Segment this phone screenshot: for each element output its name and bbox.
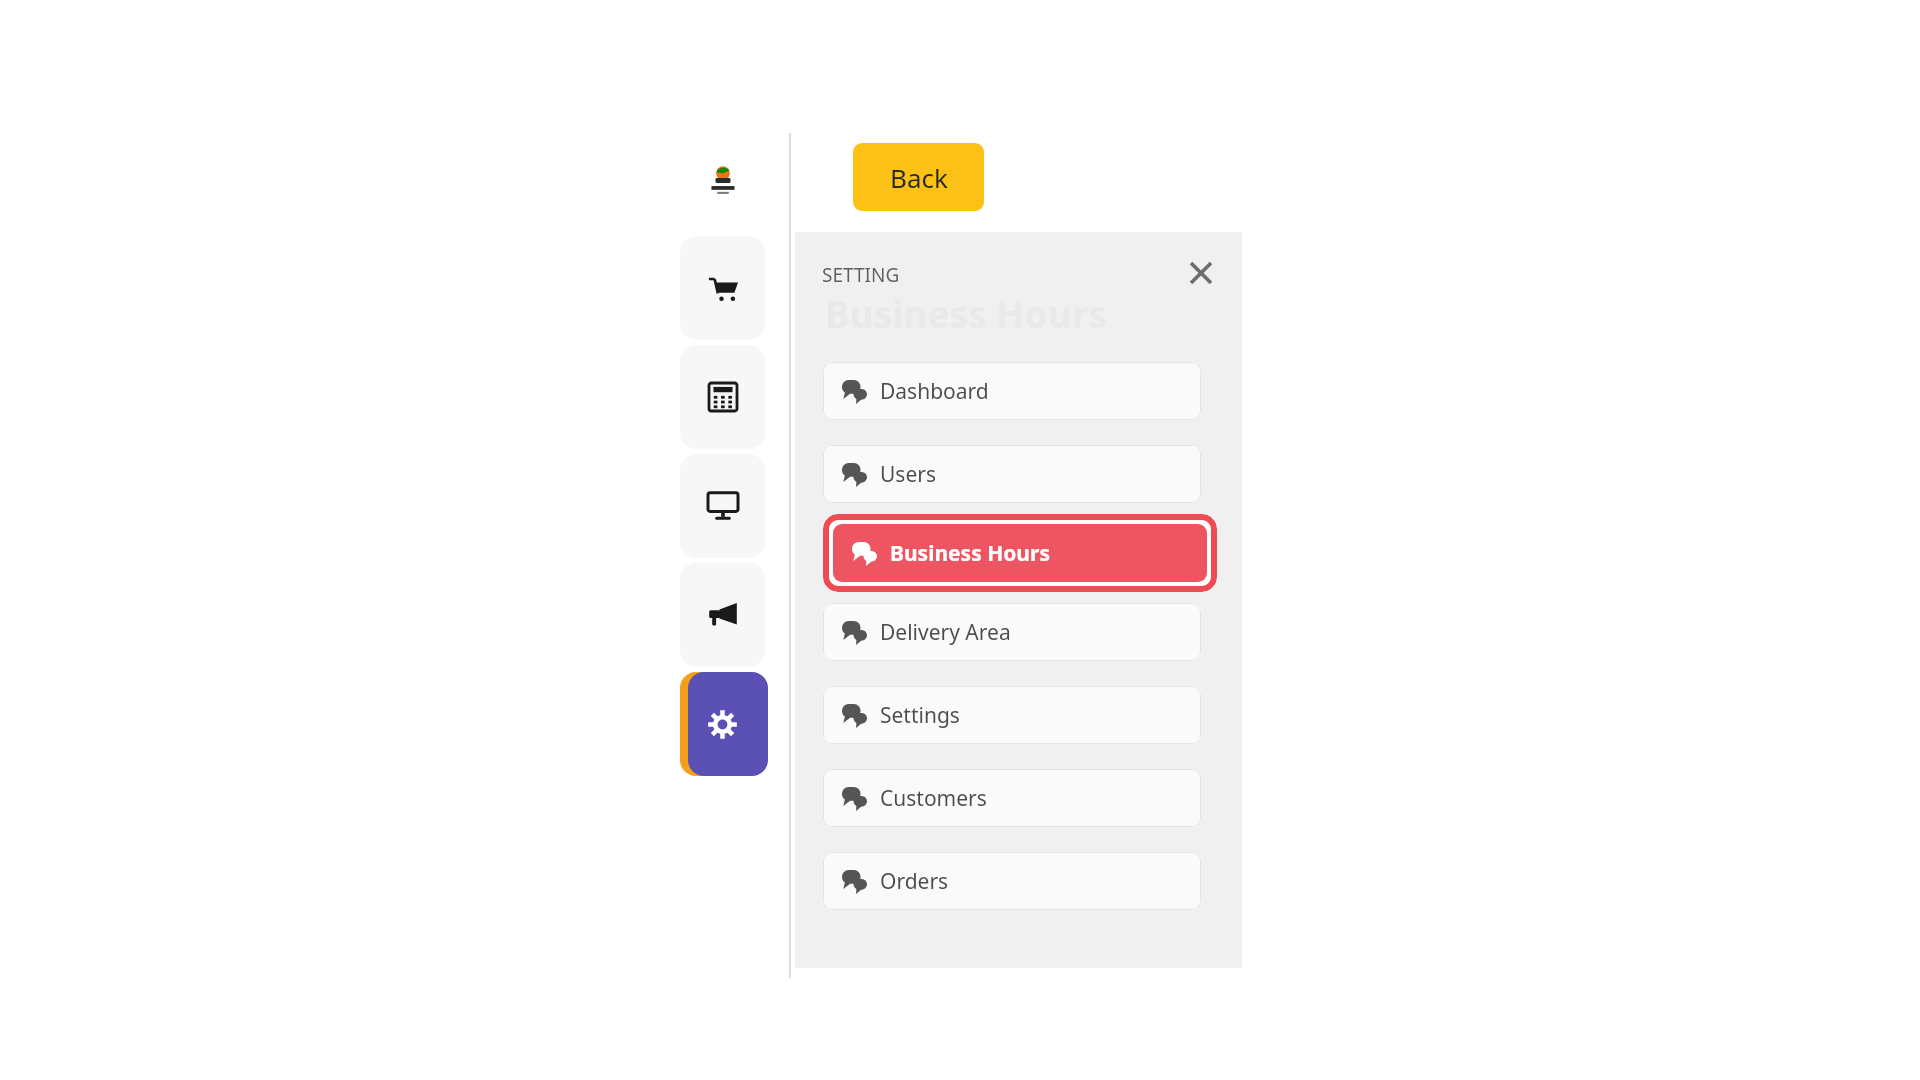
staticText: Dashboard <box>880 377 989 406</box>
button[interactable]: Delivery Area <box>823 603 1201 661</box>
other: Indian Food logo <box>680 150 765 214</box>
button[interactable]: Settings <box>823 686 1201 744</box>
button[interactable]: Orders <box>823 852 1201 910</box>
staticText: Settings <box>880 701 960 730</box>
staticText: Customers <box>880 784 987 813</box>
button[interactable]: Close <box>1178 250 1224 296</box>
button[interactable]: Orders cart <box>680 236 765 340</box>
button[interactable]: Business Hours <box>823 514 1217 592</box>
button[interactable]: Customers <box>823 769 1201 827</box>
staticText: Delivery Area <box>880 618 1011 647</box>
staticText: Business Hours <box>890 539 1050 568</box>
button[interactable]: Dashboard <box>823 362 1201 420</box>
button[interactable]: Billing calculator <box>680 345 765 449</box>
staticText: SETTING <box>822 262 900 288</box>
button[interactable]: Back <box>853 143 984 211</box>
staticText: Back <box>890 160 948 195</box>
staticText: Users <box>880 460 936 489</box>
button[interactable]: Display screen <box>680 454 765 558</box>
button[interactable]: Users <box>823 445 1201 503</box>
button[interactable]: Settings <box>680 672 765 776</box>
button[interactable]: Promotions <box>680 563 765 667</box>
staticText: Orders <box>880 867 949 896</box>
